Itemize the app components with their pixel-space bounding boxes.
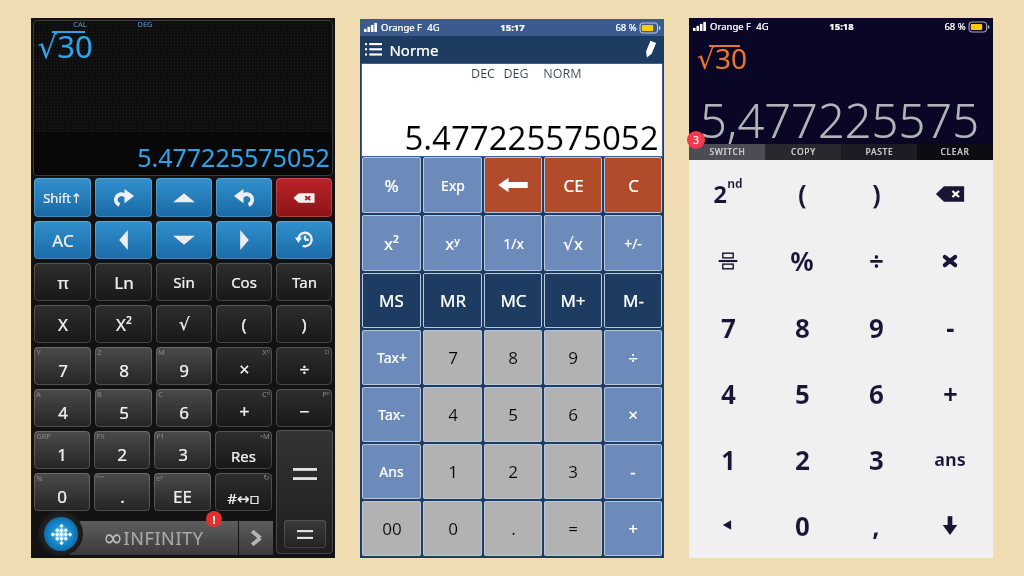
button[interactable]: multiply <box>913 227 987 294</box>
button[interactable]: redo <box>95 178 152 217</box>
button[interactable]: 8 <box>484 330 542 385</box>
button[interactable]: MS <box>362 273 421 328</box>
button[interactable]: X² <box>95 305 152 343</box>
button[interactable]: - <box>913 294 987 360</box>
button[interactable]: 0 <box>423 501 482 556</box>
button[interactable]: ↻ <box>215 473 272 511</box>
button[interactable] <box>284 520 326 548</box>
button[interactable]: Shift↑ <box>34 178 91 217</box>
button[interactable]: X <box>34 305 91 343</box>
button[interactable]: undo <box>216 178 272 217</box>
button[interactable]: 2 <box>765 426 839 492</box>
button[interactable]: CE <box>544 157 602 213</box>
button[interactable]: C <box>604 157 662 213</box>
button[interactable]: °'" <box>94 473 150 511</box>
button[interactable]: % <box>765 227 839 294</box>
button[interactable]: 2 <box>691 160 765 227</box>
button[interactable]: √x <box>544 215 602 271</box>
button[interactable]: 1 <box>423 444 482 499</box>
button[interactable]: Ln <box>95 263 152 301</box>
button[interactable]: Sin <box>156 263 212 301</box>
button[interactable]: ÷ <box>839 227 913 294</box>
button[interactable]: M- <box>604 273 662 328</box>
button[interactable]: 1/x <box>484 215 542 271</box>
button[interactable]: fraction <box>691 227 765 294</box>
button[interactable]: SWITCH <box>689 144 765 160</box>
button[interactable]: xʸ <box>423 215 482 271</box>
button[interactable]: ▫ <box>276 347 332 385</box>
button[interactable]: + <box>913 360 987 426</box>
button[interactable]: 7 <box>691 294 765 360</box>
button[interactable]: 8 <box>765 294 839 360</box>
button[interactable]: 6 <box>839 360 913 426</box>
button[interactable]: Tax- <box>362 387 421 442</box>
button[interactable]: left <box>95 221 152 259</box>
button[interactable]: 6 <box>544 387 602 442</box>
button[interactable]: Pⁿ <box>276 389 332 427</box>
button[interactable]: down <box>156 221 212 259</box>
button[interactable]: enter <box>913 492 987 558</box>
button[interactable]: % <box>362 157 421 213</box>
button[interactable]: π <box>34 263 91 301</box>
button[interactable]: 3 <box>544 444 602 499</box>
button[interactable]: ∞ <box>69 521 238 555</box>
button[interactable]: 9 <box>839 294 913 360</box>
button[interactable]: Menu <box>365 36 439 63</box>
button[interactable]: ÷ <box>604 330 662 385</box>
button[interactable]: backspace <box>913 160 987 227</box>
button[interactable]: 4 <box>691 360 765 426</box>
button[interactable]: AC <box>34 221 91 259</box>
button[interactable]: Cⁿ <box>216 389 272 427</box>
button[interactable]: . <box>484 501 542 556</box>
button[interactable]: Exp <box>423 157 482 213</box>
button[interactable]: 5 <box>765 360 839 426</box>
button[interactable]: M <box>156 347 212 385</box>
button[interactable]: 1 <box>691 426 765 492</box>
button[interactable]: 00 <box>362 501 421 556</box>
button[interactable]: Tan <box>276 263 332 301</box>
button[interactable]: FX <box>94 431 150 469</box>
button[interactable]: B <box>95 389 152 427</box>
button[interactable]: 7 <box>423 330 482 385</box>
button[interactable]: More <box>239 521 273 555</box>
button[interactable]: Y <box>34 347 91 385</box>
button[interactable]: eˣ <box>154 473 211 511</box>
button[interactable]: 4 <box>423 387 482 442</box>
button[interactable]: + <box>604 501 662 556</box>
button[interactable]: ( <box>765 160 839 227</box>
button[interactable]: Z <box>95 347 152 385</box>
button[interactable]: ans <box>913 426 987 492</box>
button[interactable]: 2 <box>484 444 542 499</box>
button[interactable]: % <box>34 473 90 511</box>
button[interactable]: Cos <box>216 263 272 301</box>
button[interactable]: 3 <box>839 426 913 492</box>
button[interactable]: CLEAR <box>917 144 993 160</box>
button[interactable]: M+ <box>544 273 602 328</box>
button[interactable]: Tax+ <box>362 330 421 385</box>
button[interactable]: right <box>216 221 272 259</box>
button[interactable]: Ans <box>362 444 421 499</box>
button[interactable]: ( <box>216 305 272 343</box>
button[interactable]: backspace <box>484 157 542 213</box>
button[interactable]: Equals <box>276 430 333 554</box>
button[interactable]: ‣M <box>215 431 272 469</box>
button[interactable]: x² <box>362 215 421 271</box>
button[interactable]: - <box>604 444 662 499</box>
button[interactable]: × <box>604 387 662 442</box>
button[interactable]: GRP <box>34 431 90 469</box>
button[interactable]: C <box>156 389 212 427</box>
button[interactable]: +/- <box>604 215 662 271</box>
button[interactable]: 9 <box>544 330 602 385</box>
button[interactable]: ) <box>276 305 332 343</box>
button[interactable]: MR <box>423 273 482 328</box>
button[interactable]: ) <box>839 160 913 227</box>
button[interactable]: Infinity logo <box>38 511 83 556</box>
button[interactable]: F1 <box>154 431 211 469</box>
button[interactable]: backspace <box>276 178 332 217</box>
button[interactable]: up <box>156 178 212 217</box>
button[interactable]: Edit <box>642 36 658 63</box>
button[interactable]: left <box>691 492 765 558</box>
button[interactable]: history <box>276 221 332 259</box>
button[interactable]: MC <box>484 273 542 328</box>
button[interactable]: PASTE <box>841 144 917 160</box>
